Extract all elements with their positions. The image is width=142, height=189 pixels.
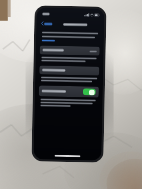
button[interactable] xyxy=(39,65,99,76)
button[interactable] xyxy=(40,45,100,56)
button[interactable]: Back xyxy=(40,20,53,27)
button[interactable]: Toggle on xyxy=(83,88,96,96)
button[interactable]: Toggle on xyxy=(39,85,99,98)
